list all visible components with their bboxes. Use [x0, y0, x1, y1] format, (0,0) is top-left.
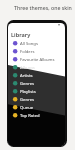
staticText: Genres [20, 97, 35, 103]
button[interactable]: Favourite Albums [20, 57, 55, 63]
button[interactable]: Folders [20, 49, 35, 55]
button[interactable]: Genres [20, 97, 35, 103]
button[interactable]: Library [11, 31, 31, 39]
button[interactable]: Library [8, 23, 65, 146]
staticText: All Songs [20, 41, 38, 47]
button[interactable]: All Songs [20, 41, 38, 47]
staticText: Library [11, 31, 31, 39]
staticText: Genres [20, 81, 35, 87]
staticText: Three themes, one skin [14, 4, 72, 11]
button[interactable]: Playlists [20, 89, 36, 95]
staticText: Albums [20, 65, 35, 71]
staticText: Queue [20, 105, 34, 111]
button[interactable]: Queue [20, 105, 34, 111]
button[interactable]: Artists [20, 73, 33, 79]
staticText: Playlists [20, 89, 36, 95]
staticText: Top Rated [20, 113, 40, 119]
button[interactable]: Top Rated [20, 113, 40, 119]
staticText: Favourite Albums [20, 57, 55, 63]
staticText: Folders [20, 49, 35, 55]
staticText: Artists [20, 73, 33, 79]
button[interactable]: Albums [20, 65, 35, 71]
button[interactable]: Genres [20, 81, 35, 87]
